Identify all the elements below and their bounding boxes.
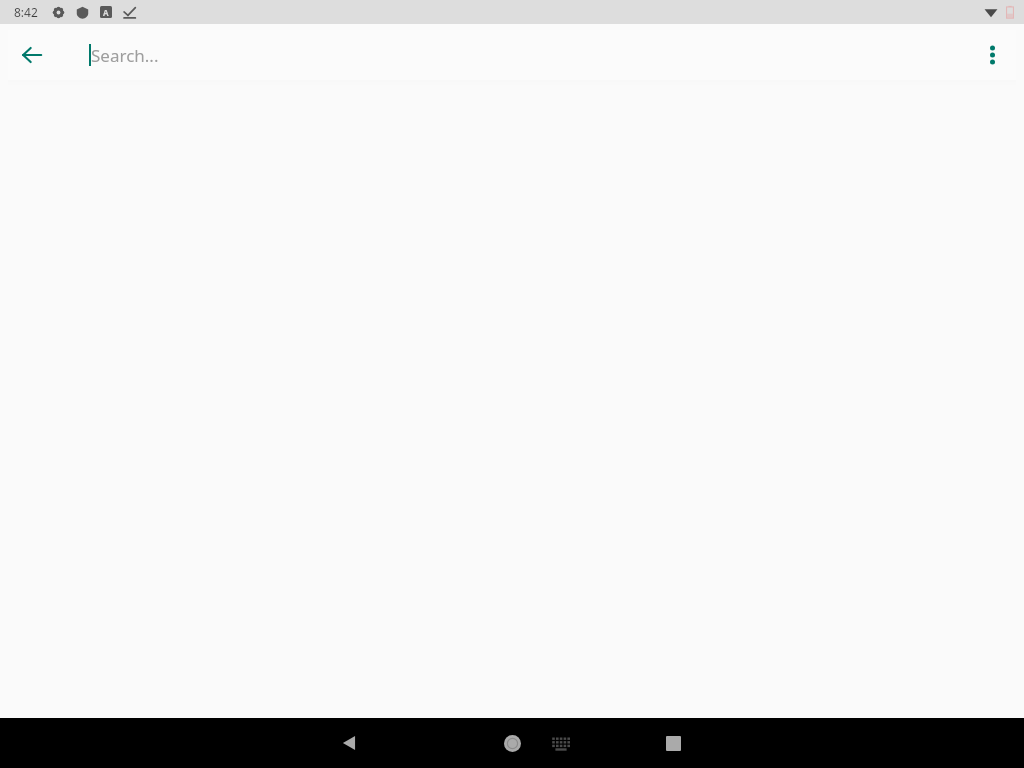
staticText: Search...	[91, 44, 159, 67]
button[interactable]: Search...	[89, 30, 968, 80]
button[interactable]: Recent apps	[649, 719, 697, 767]
button[interactable]: Back	[325, 719, 373, 767]
button[interactable]: Show keyboard	[537, 719, 585, 767]
staticText: 8:42	[14, 4, 38, 20]
button[interactable]: Home	[488, 719, 536, 767]
staticText: A	[103, 7, 109, 18]
button[interactable]: Navigate up	[8, 31, 56, 79]
button[interactable]: More options	[968, 31, 1016, 79]
